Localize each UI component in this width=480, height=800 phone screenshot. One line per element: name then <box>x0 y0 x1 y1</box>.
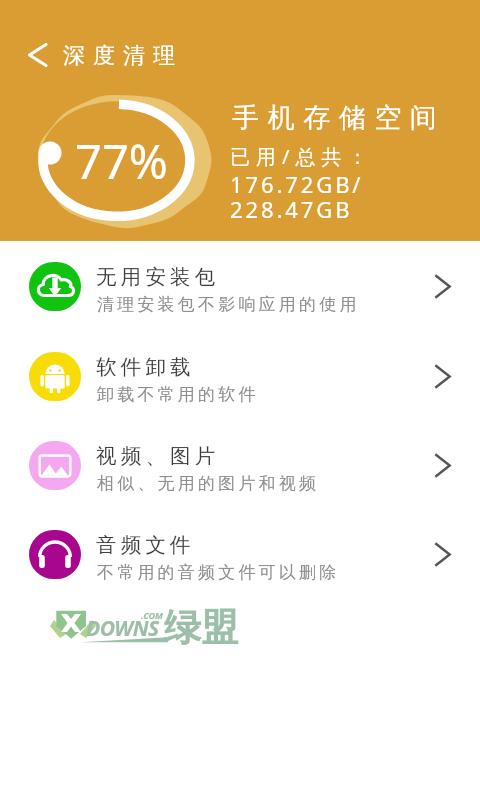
staticText: 无用安装包 <box>96 264 220 290</box>
button[interactable]: 音频文件 <box>0 510 480 599</box>
staticText: 清理安装包不影响应用的使用 <box>97 294 360 315</box>
staticText: 深度清理 <box>59 42 179 70</box>
staticText: 音频文件 <box>96 532 195 558</box>
staticText: 228.47GB <box>230 194 353 224</box>
button[interactable]: 无用安装包 <box>0 242 480 331</box>
staticText: 视频、图片 <box>96 443 220 469</box>
staticText: 软件卸载 <box>96 354 195 380</box>
staticText: 不常用的音频文件可以删除 <box>97 562 340 583</box>
button[interactable]: Back <box>20 36 56 72</box>
button[interactable]: 视频、图片 <box>0 421 480 510</box>
staticText: 176.72GB/ <box>230 169 364 199</box>
button[interactable]: 软件卸载 <box>0 332 480 421</box>
staticText: 绿盟 <box>164 604 238 651</box>
staticText: 77% <box>75 129 168 193</box>
staticText: .COM <box>141 609 163 621</box>
staticText: 手机存储空间 <box>228 101 441 135</box>
staticText: 卸载不常用的软件 <box>97 384 259 405</box>
staticText: DOWNS <box>86 614 159 643</box>
staticText: 相似、无用的图片和视频 <box>97 473 320 494</box>
staticText: 已用/总共： <box>230 143 374 170</box>
